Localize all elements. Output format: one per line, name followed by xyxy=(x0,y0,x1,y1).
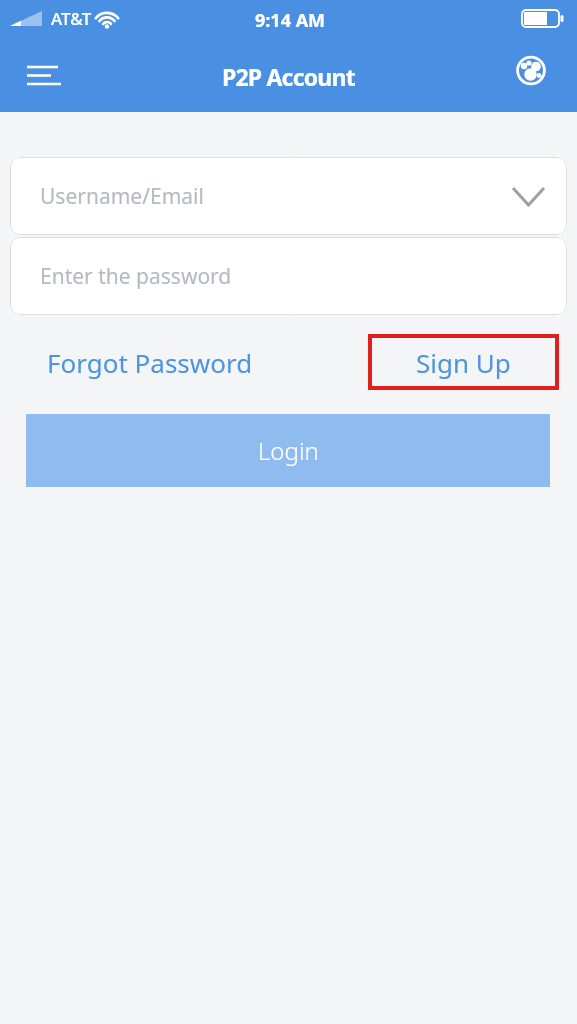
button[interactable]: Enter the password xyxy=(10,237,567,315)
staticText: Forgot Password xyxy=(47,345,253,380)
button[interactable]: Username/Email xyxy=(10,157,567,235)
staticText: Username/Email xyxy=(40,182,204,211)
staticText: Login xyxy=(258,434,319,467)
button[interactable]: Sign Up xyxy=(368,334,559,390)
button[interactable] xyxy=(511,51,551,91)
staticText: AT&T xyxy=(51,7,92,30)
staticText: 9:14 AM xyxy=(255,8,326,33)
button[interactable] xyxy=(17,58,67,98)
staticText: Enter the password xyxy=(40,262,232,291)
staticText: Sign Up xyxy=(416,345,511,380)
staticText: P2P Account xyxy=(222,61,355,92)
button[interactable]: Login xyxy=(26,414,550,487)
button[interactable]: Forgot Password xyxy=(40,334,246,390)
